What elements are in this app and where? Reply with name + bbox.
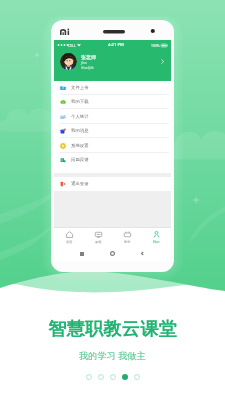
staticText: 我的下载 [71, 99, 89, 105]
button[interactable]: 文件上传 [54, 81, 171, 95]
button[interactable]: Home [110, 251, 115, 256]
button[interactable]: Avatar [60, 53, 77, 70]
button[interactable]: 我的下载 [54, 95, 171, 109]
staticText: 张老师 [81, 54, 96, 60]
staticText: 退出登录 [71, 181, 89, 187]
staticText: 我的学习 我做主 [79, 349, 146, 362]
button[interactable]: 个人统计 [54, 110, 171, 124]
staticText: 系统设置 [71, 143, 89, 149]
staticText: 我的消息 [71, 128, 89, 134]
button[interactable]: 教学 [113, 228, 142, 246]
staticText: 智慧职教云课堂 [48, 318, 177, 341]
staticText: 课程 [95, 240, 102, 244]
button[interactable]: Back [140, 251, 145, 256]
staticText: CELL [68, 43, 76, 48]
button[interactable]: 我的 [142, 228, 171, 246]
staticText: jhm [81, 61, 87, 65]
staticText: 问题反馈 [71, 157, 89, 163]
button[interactable]: 我的消息 [54, 124, 171, 138]
staticText: 文件上传 [71, 85, 89, 91]
staticText: 个人统计 [71, 114, 89, 120]
staticText: 教学 [124, 240, 131, 244]
button[interactable]: Open profile [159, 58, 166, 65]
button[interactable]: 问题反馈 [54, 153, 171, 167]
button[interactable]: 退出登录 [54, 177, 171, 191]
staticText: 学院名称 [81, 66, 94, 70]
staticText: 4:21 PM [108, 42, 124, 48]
staticText: 100% [151, 43, 160, 48]
button[interactable]: 首页 [54, 228, 84, 246]
button[interactable]: 课程 [84, 228, 113, 246]
staticText: 首页 [66, 240, 73, 244]
button[interactable]: 系统设置 [54, 139, 171, 153]
staticText: 我的 [153, 240, 160, 244]
